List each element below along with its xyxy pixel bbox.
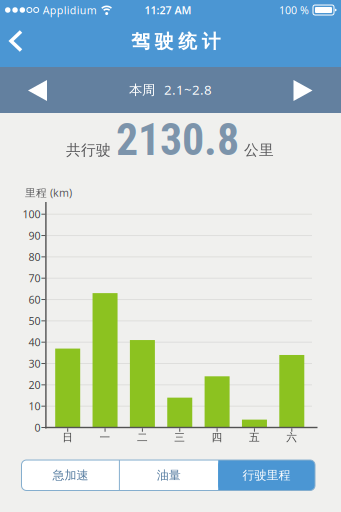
button[interactable] [285,70,320,110]
staticText: 11:27 AM [144,3,191,17]
staticText: 六 [286,431,297,444]
staticText: 50 [28,314,40,328]
staticText: 五 [249,431,260,444]
staticText: 急加速 [52,468,88,483]
staticText: 2130.8 [116,114,239,166]
button[interactable]: 油量 [119,460,218,490]
staticText: 70 [28,271,40,285]
button[interactable] [1,24,31,58]
staticText: 共行驶 [66,141,111,159]
staticText: 30 [28,356,40,371]
staticText: 里程 (km) [25,185,72,200]
button[interactable]: 急加速 [21,460,119,490]
staticText: 90 [28,228,40,243]
staticText: 油量 [157,468,181,483]
staticText: 40 [28,335,40,349]
staticText: 100 [22,207,40,221]
staticText: 本周 2.1~2.8 [129,81,212,98]
staticText: 100 % [279,3,309,17]
staticText: 驾驶统计 [131,30,221,53]
staticText: 行驶里程 [243,468,291,483]
staticText: 四 [212,431,223,444]
staticText: 三 [174,431,185,444]
staticText: 80 [28,250,40,264]
staticText: 一 [100,431,111,444]
staticText: 20 [28,378,40,392]
staticText: 二 [137,431,148,444]
staticText: 0 [34,420,40,435]
button[interactable] [20,70,55,110]
button[interactable]: 行驶里程 [218,460,315,490]
staticText: Applidium [43,3,97,17]
staticText: 日 [62,431,73,444]
staticText: 60 [28,292,40,307]
staticText: 10 [28,399,40,413]
staticText: 公里 [244,141,274,159]
